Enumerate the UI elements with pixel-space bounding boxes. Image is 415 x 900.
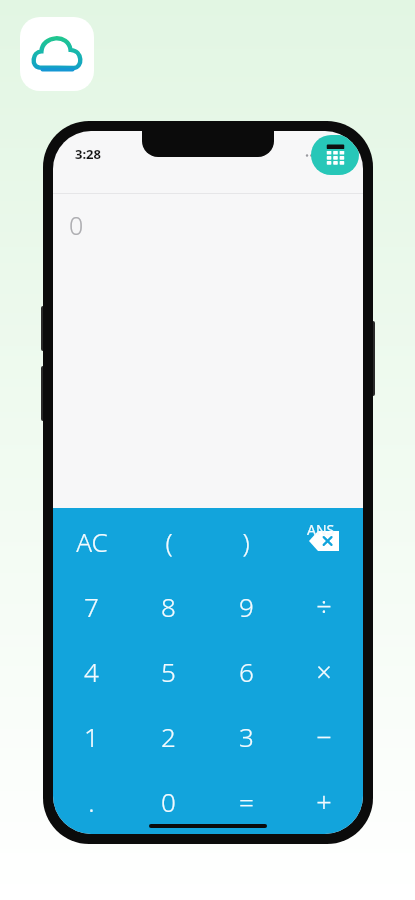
button[interactable]: Backspace bbox=[285, 508, 363, 574]
button[interactable]: AC bbox=[53, 508, 130, 574]
button[interactable]: 7 bbox=[53, 574, 130, 639]
button[interactable]: 9 bbox=[207, 574, 285, 639]
staticText: + bbox=[316, 783, 332, 820]
button[interactable]: 3 bbox=[207, 704, 285, 769]
button[interactable]: ) bbox=[207, 508, 285, 574]
staticText: 8 bbox=[161, 589, 176, 624]
staticText: ( bbox=[165, 524, 173, 559]
button[interactable]: Calculator bbox=[311, 135, 359, 175]
button[interactable]: ÷ bbox=[285, 574, 363, 639]
staticText: 7 bbox=[84, 589, 99, 624]
button[interactable]: − bbox=[285, 704, 363, 769]
staticText: 0 bbox=[161, 784, 176, 819]
staticText: × bbox=[316, 653, 332, 690]
button[interactable]: 6 bbox=[207, 639, 285, 704]
button[interactable]: 4 bbox=[53, 639, 130, 704]
staticText: ) bbox=[242, 524, 250, 559]
button[interactable]: 8 bbox=[130, 574, 207, 639]
staticText: 2 bbox=[161, 719, 176, 754]
staticText: 5 bbox=[161, 654, 176, 689]
staticText: ÷ bbox=[316, 588, 332, 625]
staticText: AC bbox=[76, 524, 108, 559]
button[interactable]: 1 bbox=[53, 704, 130, 769]
staticText: − bbox=[316, 718, 332, 755]
staticText: 1 bbox=[84, 719, 99, 754]
staticText: 3:28 bbox=[75, 145, 101, 163]
staticText: 3 bbox=[239, 719, 254, 754]
button[interactable]: 5 bbox=[130, 639, 207, 704]
button[interactable]: . bbox=[53, 769, 130, 834]
button[interactable]: 2 bbox=[130, 704, 207, 769]
button[interactable]: × bbox=[285, 639, 363, 704]
staticText: ANS bbox=[307, 520, 335, 539]
staticText: 6 bbox=[239, 654, 254, 689]
button[interactable]: 0 bbox=[130, 769, 207, 834]
staticText: = bbox=[239, 784, 254, 819]
button[interactable]: ( bbox=[130, 508, 207, 574]
button[interactable]: = bbox=[207, 769, 285, 834]
button[interactable]: Cloud app icon bbox=[20, 17, 94, 91]
staticText: 0 bbox=[69, 208, 84, 242]
button[interactable]: + bbox=[285, 769, 363, 834]
staticText: . bbox=[88, 784, 95, 819]
staticText: 4 bbox=[84, 654, 99, 689]
staticText: 9 bbox=[239, 589, 254, 624]
